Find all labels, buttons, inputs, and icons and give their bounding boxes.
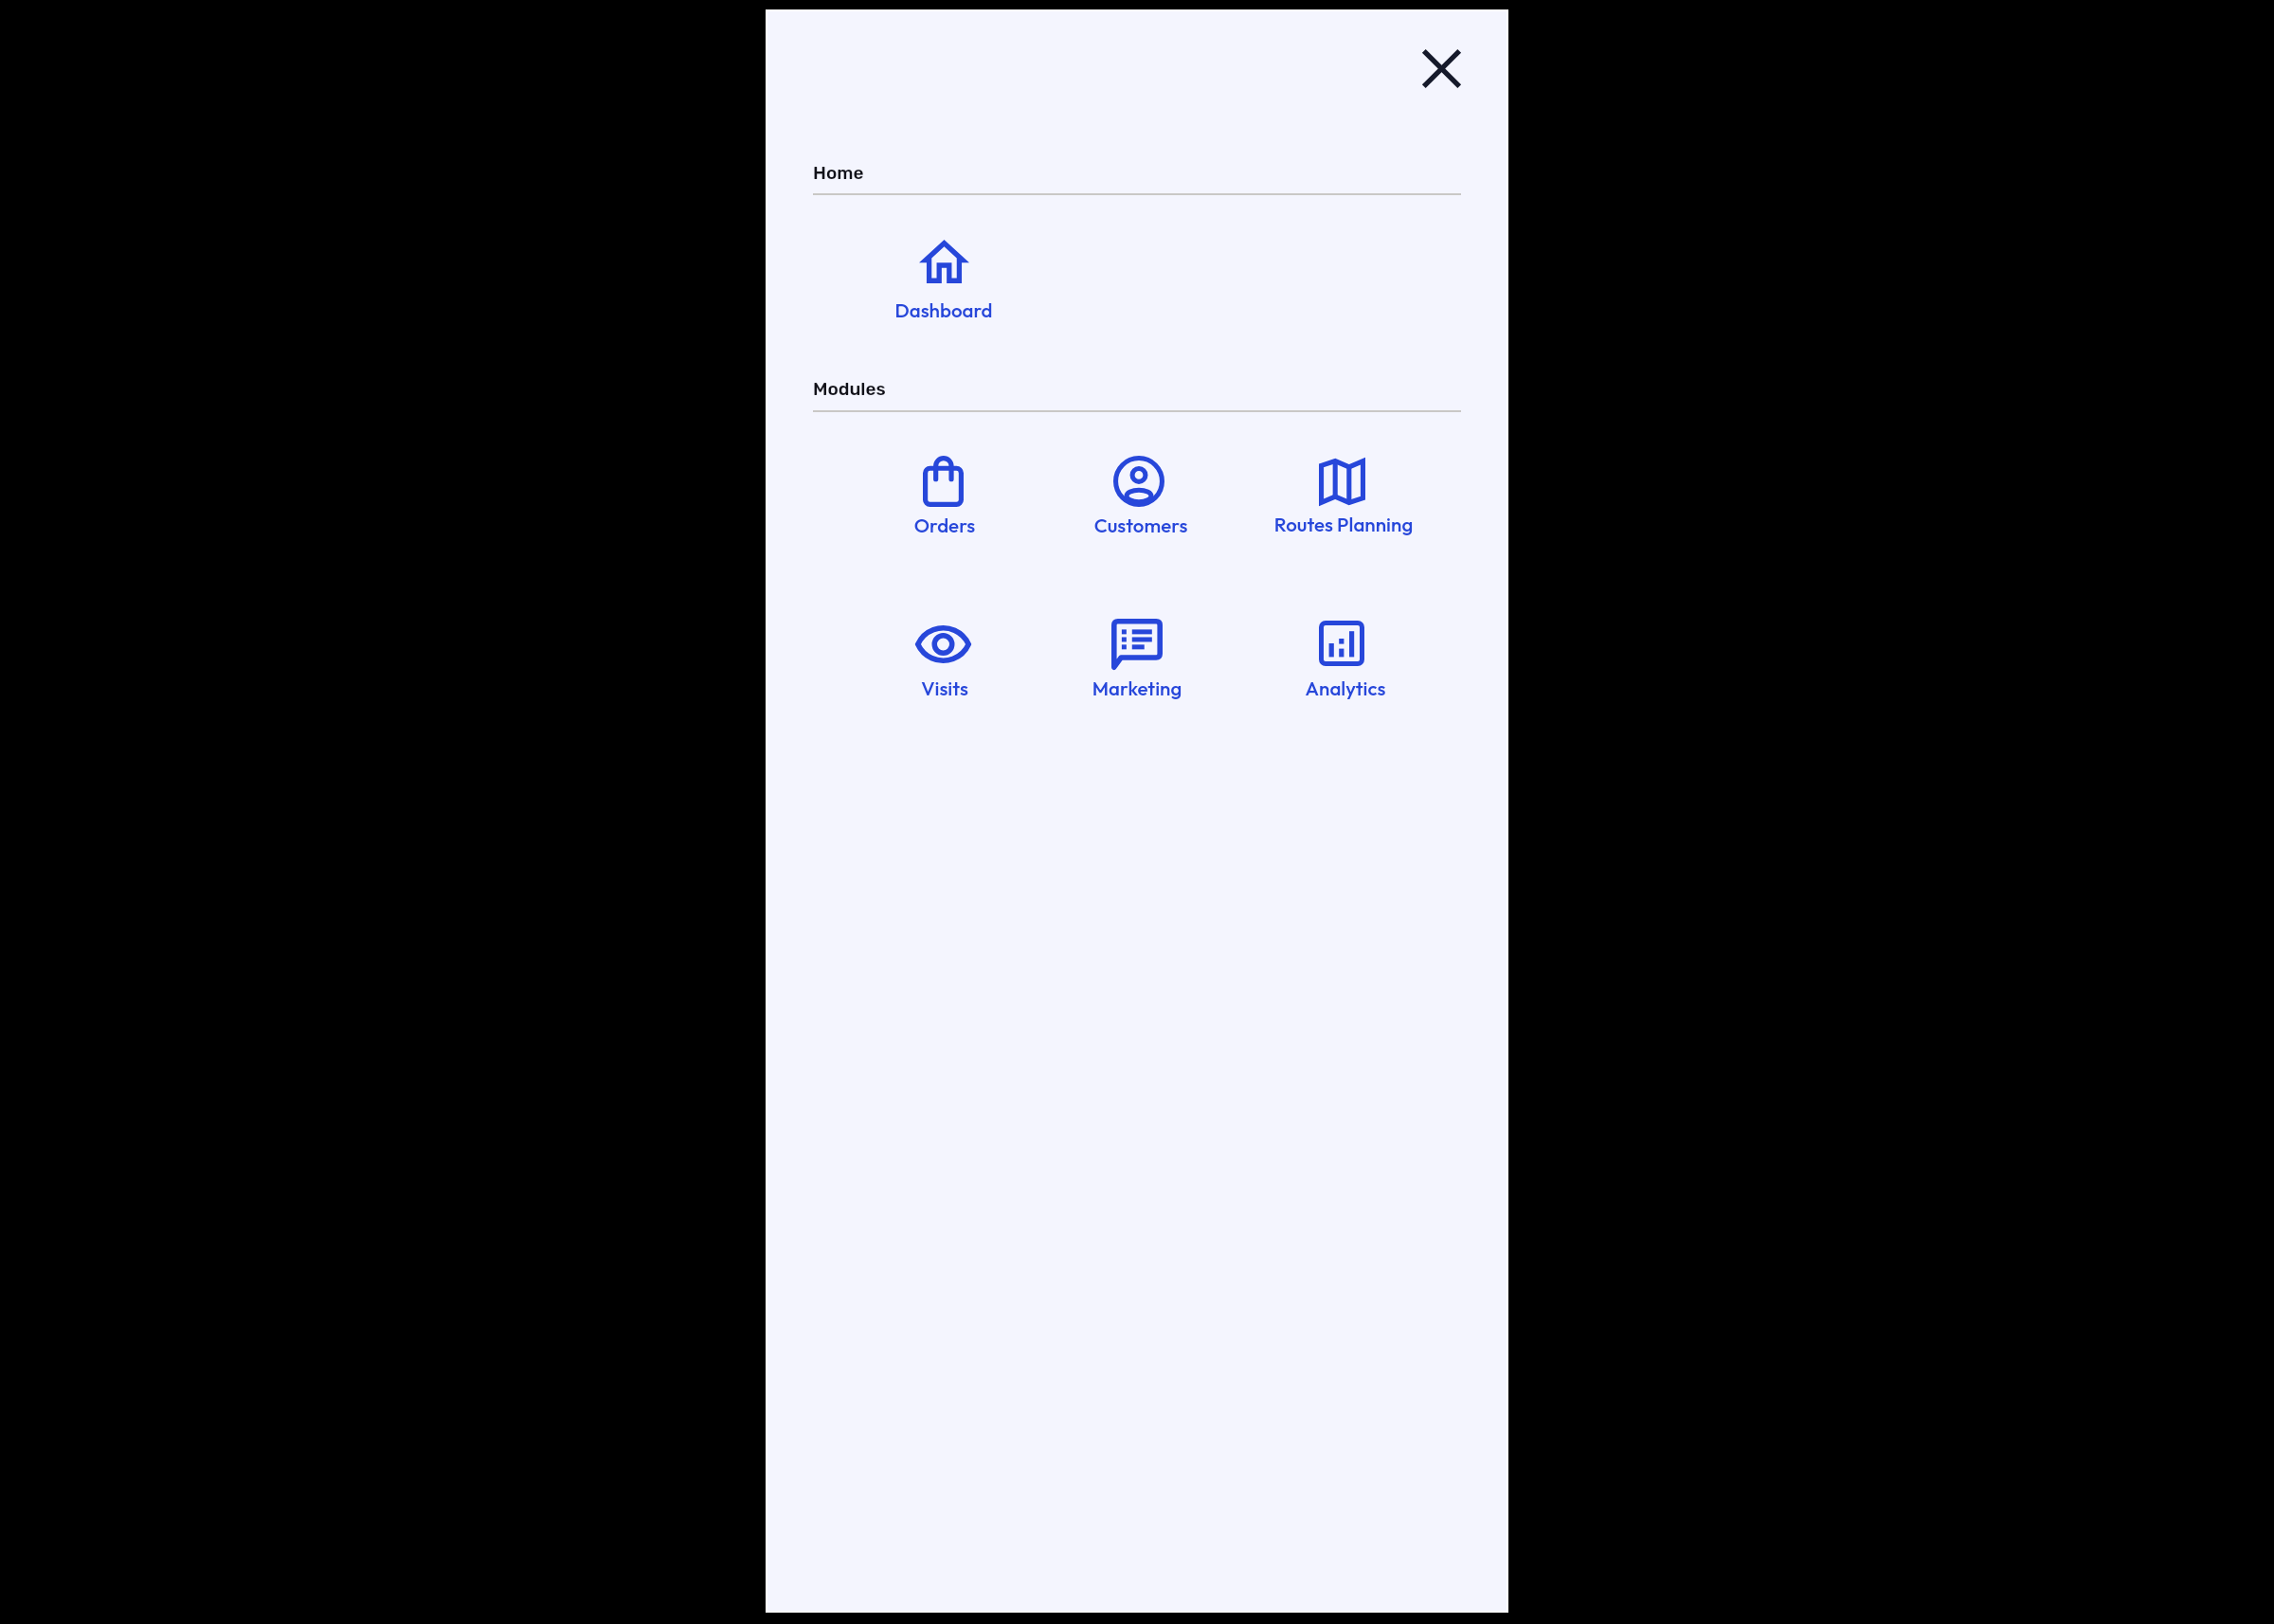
button[interactable]: Dashboard — [839, 226, 1048, 328]
button[interactable]: Customers — [1035, 442, 1243, 543]
button[interactable]: Marketing — [1033, 605, 1241, 706]
button[interactable]: Visits — [839, 612, 1047, 706]
staticText: Routes Planning — [1239, 512, 1448, 536]
button[interactable]: Analytics — [1237, 607, 1446, 706]
button[interactable]: Close — [1391, 18, 1491, 118]
staticText: Visits — [840, 676, 1049, 700]
staticText: Dashboard — [839, 298, 1048, 322]
staticText: Marketing — [1033, 676, 1241, 700]
staticText: Home — [813, 162, 864, 184]
button[interactable]: Routes Planning — [1237, 445, 1446, 542]
staticText: Modules — [813, 378, 886, 400]
staticText: Customers — [1037, 513, 1245, 537]
staticText: Orders — [840, 513, 1049, 537]
button[interactable]: Orders — [839, 442, 1048, 543]
staticText: Analytics — [1241, 676, 1450, 700]
